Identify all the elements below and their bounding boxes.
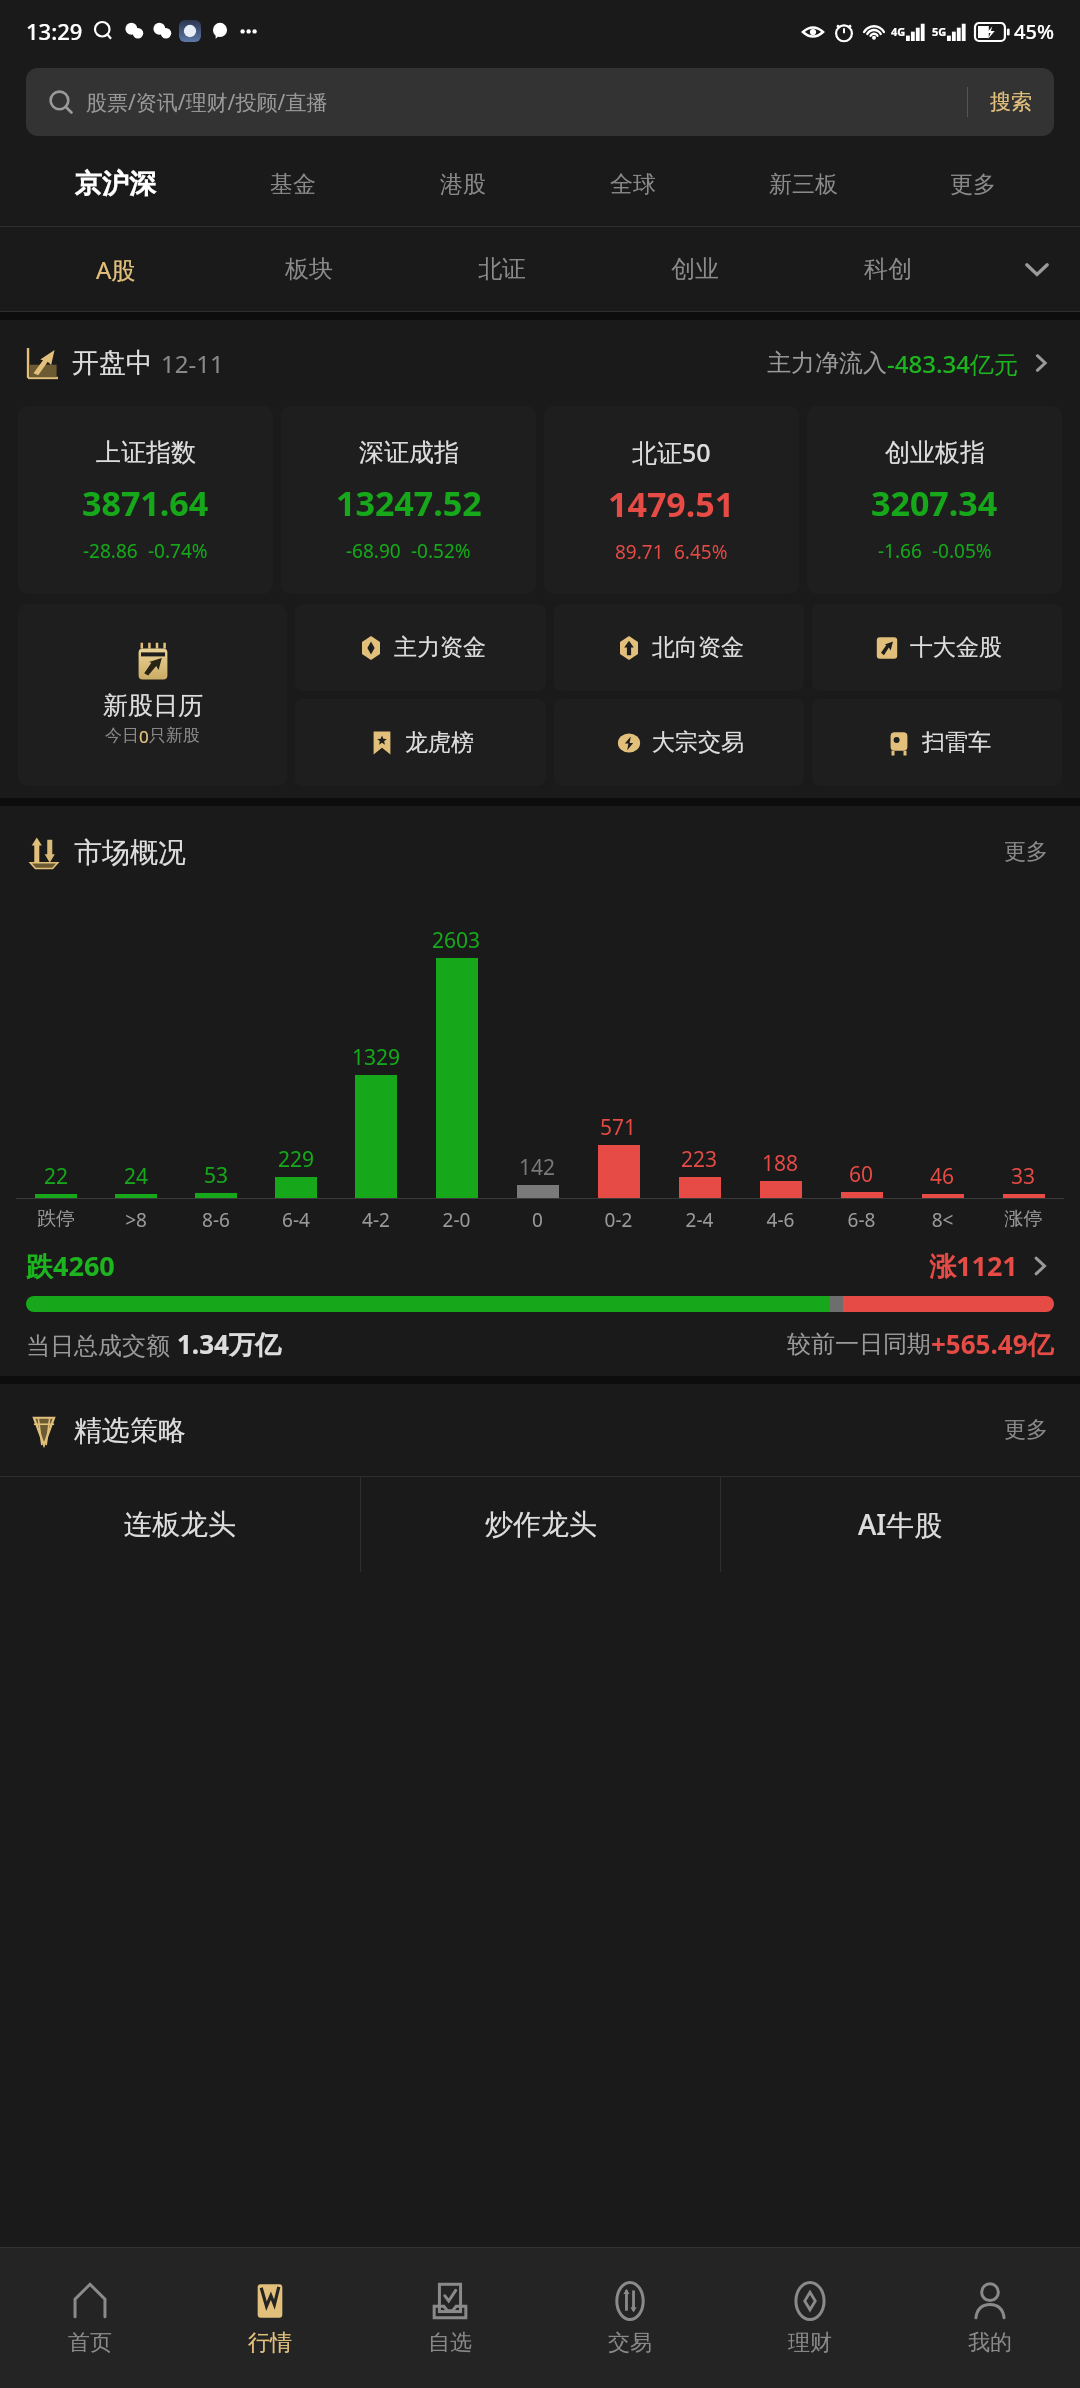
staticText: -0.05% (932, 538, 992, 564)
button[interactable]: 科创 (791, 226, 984, 312)
staticText: 新股日历 (103, 690, 203, 721)
staticText: 46 (930, 1162, 955, 1191)
staticText: 22 (44, 1162, 69, 1191)
staticText: 大宗交易 (652, 728, 744, 757)
staticText: 北证50 (632, 435, 711, 469)
staticText: 0-2 (578, 1207, 659, 1233)
button[interactable]: 自选 (360, 2248, 540, 2388)
button[interactable]: 开盘中 (0, 320, 1080, 406)
staticText: 扫雷车 (922, 728, 991, 757)
staticText: AI牛股 (858, 1505, 943, 1543)
staticText: 创业板指 (885, 437, 985, 468)
button[interactable]: 北向资金 (554, 604, 804, 691)
button[interactable]: 京沪深 (22, 142, 208, 226)
staticText: 跌4260 (26, 1247, 115, 1284)
staticText: 自选 (428, 2329, 472, 2357)
staticText: +565.49亿 (931, 1326, 1054, 1362)
staticText: 4-2 (336, 1207, 416, 1233)
button[interactable]: 搜索 (968, 89, 1054, 115)
staticText: -1.66 (878, 538, 922, 564)
button[interactable]: 交易 (540, 2248, 720, 2388)
button[interactable]: 展开更多 (994, 226, 1080, 312)
staticText: 股票/资讯/理财/投顾/直播 (86, 88, 328, 117)
staticText: 精选策略 (74, 1413, 186, 1448)
staticText: 港股 (440, 170, 486, 199)
staticText: 涨1121 (929, 1247, 1018, 1284)
staticText: 13:29 (26, 16, 83, 46)
staticText: 基金 (270, 170, 316, 199)
button[interactable]: 我的 (900, 2248, 1080, 2388)
button[interactable]: 新三板 (718, 142, 888, 226)
staticText: -68.90 (346, 538, 401, 564)
button[interactable]: 全球 (548, 142, 718, 226)
staticText: 6-4 (256, 1207, 336, 1233)
staticText: 2603 (432, 926, 481, 955)
button[interactable]: 创业板指 (807, 406, 1062, 594)
staticText: 北证 (478, 254, 526, 284)
button[interactable]: 理财 (720, 2248, 900, 2388)
button[interactable]: 扫雷车 (812, 699, 1062, 786)
button[interactable]: 板块 (212, 226, 405, 312)
staticText: 4-6 (740, 1207, 821, 1233)
staticText: 开盘中 (72, 346, 153, 380)
staticText: 深证成指 (359, 437, 459, 468)
staticText: 上证指数 (96, 437, 196, 468)
staticText: 45% (1014, 18, 1054, 45)
staticText: 今日 (105, 725, 139, 746)
staticText: 更多 (950, 170, 996, 199)
staticText: 5G (932, 24, 947, 39)
button[interactable]: 主力资金 (295, 604, 546, 691)
staticText: 炒作龙头 (485, 1507, 597, 1542)
staticText: 13247.52 (336, 480, 482, 526)
staticText: 1329 (352, 1043, 401, 1072)
staticText: 2-4 (659, 1207, 740, 1233)
staticText: 我的 (968, 2329, 1012, 2357)
staticText: 板块 (285, 254, 333, 284)
button[interactable]: 首页 (0, 2248, 180, 2388)
staticText: 涨停 (983, 1207, 1064, 1231)
staticText: 科创 (864, 254, 912, 284)
staticText: 主力资金 (394, 633, 486, 662)
staticText: 2-0 (416, 1207, 497, 1233)
button[interactable]: 大宗交易 (554, 699, 804, 786)
staticText: 连板龙头 (124, 1507, 236, 1542)
staticText: 0 (497, 1207, 578, 1233)
staticText: 188 (762, 1149, 799, 1178)
button[interactable]: 深证成指 (281, 406, 536, 594)
staticText: 12-11 (161, 347, 224, 380)
staticText: 229 (278, 1145, 315, 1174)
button[interactable]: 基金 (208, 142, 378, 226)
staticText: 当日总成交额 (26, 1328, 177, 1361)
staticText: 33 (1011, 1162, 1036, 1191)
staticText: 6.45% (674, 539, 728, 565)
button[interactable]: 新股日历 (18, 604, 287, 786)
button[interactable]: 股票/资讯/理财/投顾/直播 (26, 68, 1054, 136)
button[interactable]: AI牛股 (721, 1476, 1080, 1572)
button[interactable]: 炒作龙头 (361, 1476, 720, 1572)
button[interactable]: 更多 (998, 1410, 1054, 1450)
staticText: 8-6 (176, 1207, 256, 1233)
button[interactable]: 创业 (598, 226, 791, 312)
button[interactable]: 上证指数 (18, 406, 273, 594)
button[interactable]: A股 (20, 226, 212, 312)
staticText: 只新股 (149, 725, 200, 746)
button[interactable]: 龙虎榜 (295, 699, 546, 786)
button[interactable]: 北证 (405, 226, 598, 312)
staticText: 首页 (68, 2329, 112, 2357)
staticText: 89.71 (615, 539, 664, 565)
button[interactable]: 更多 (888, 142, 1058, 226)
staticText: 主力净流入 (767, 348, 887, 378)
staticText: 创业 (671, 254, 719, 284)
staticText: 1.34万亿 (177, 1326, 281, 1362)
button[interactable]: 十大金股 (812, 604, 1062, 691)
staticText: 龙虎榜 (405, 728, 474, 757)
staticText: 4G (891, 24, 906, 39)
button[interactable]: 跌4260 (26, 1247, 1054, 1284)
button[interactable]: 北证50 (544, 406, 799, 594)
button[interactable]: 行情 (180, 2248, 360, 2388)
staticText: 24 (124, 1162, 149, 1191)
staticText: -0.74% (148, 538, 208, 564)
button[interactable]: 连板龙头 (0, 1476, 360, 1572)
button[interactable]: 更多 (998, 832, 1054, 872)
button[interactable]: 港股 (378, 142, 548, 226)
